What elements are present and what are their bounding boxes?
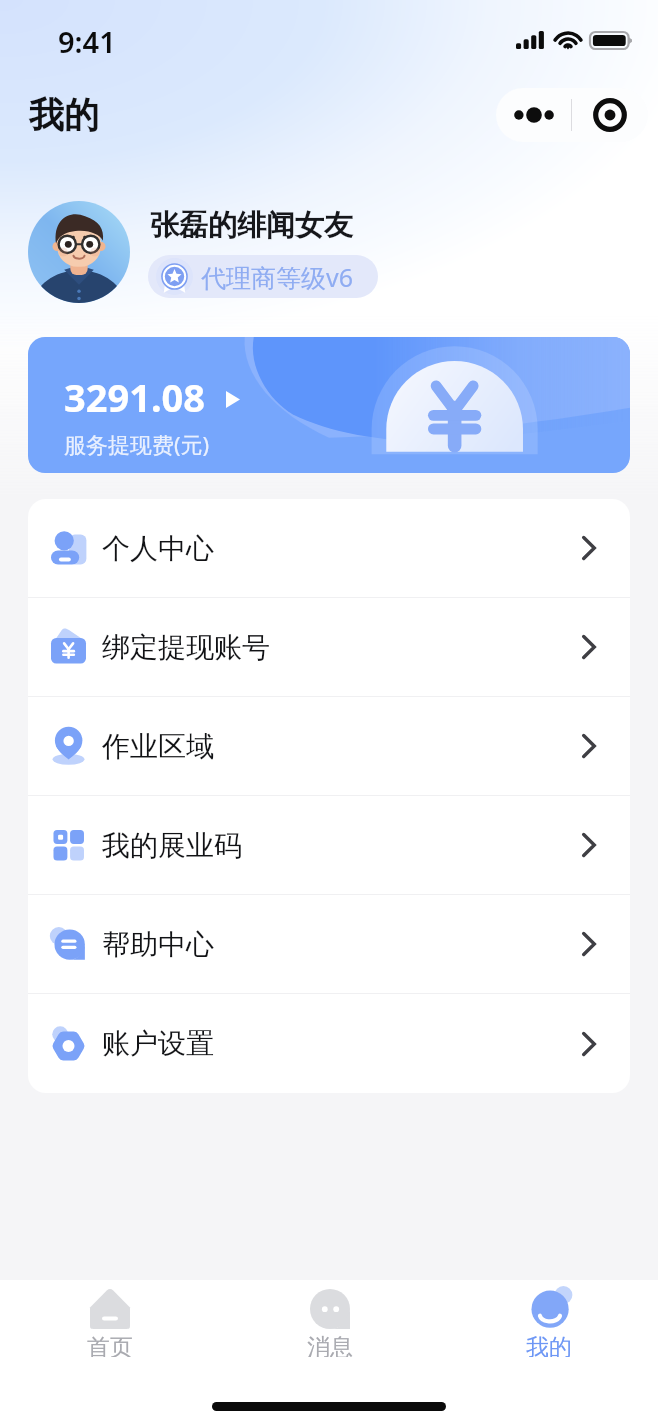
button[interactable]: 消息 (220, 1289, 439, 1357)
staticText: 代理商等级v6 (201, 260, 354, 294)
staticText: 3291.08 (64, 371, 206, 423)
staticText: 作业区域 (102, 729, 214, 764)
button[interactable]: 作业区域 (28, 697, 630, 795)
button[interactable]: 账户设置 (28, 994, 630, 1093)
button[interactable]: Mini program menu (496, 88, 648, 142)
staticText: 绑定提现账号 (102, 630, 270, 665)
button[interactable]: 我的展业码 (28, 796, 630, 894)
staticText: 我的 (526, 1333, 572, 1357)
button[interactable]: 绑定提现账号 (28, 598, 630, 696)
staticText: 账户设置 (102, 1026, 214, 1061)
staticText: 首页 (87, 1333, 133, 1357)
button[interactable]: 张磊的绯闻女友 (28, 201, 630, 303)
staticText: 我的 (29, 93, 99, 137)
other: Close mini program (593, 98, 627, 132)
staticText: 张磊的绯闻女友 (150, 207, 353, 244)
button[interactable]: 首页 (0, 1289, 220, 1357)
staticText: 我的展业码 (102, 828, 242, 863)
button[interactable]: 我的 (439, 1289, 658, 1357)
button[interactable]: 帮助中心 (28, 895, 630, 993)
staticText: 9:41 (58, 22, 116, 61)
button[interactable]: 个人中心 (28, 499, 630, 597)
button[interactable]: 代理商等级v6 (156, 255, 354, 298)
staticText: 消息 (307, 1333, 353, 1357)
staticText: 服务提现费(元) (64, 429, 210, 459)
button[interactable]: 3291.08 (28, 337, 630, 473)
staticText: 帮助中心 (102, 927, 214, 962)
staticText: 个人中心 (102, 531, 214, 566)
other: More (513, 107, 555, 123)
